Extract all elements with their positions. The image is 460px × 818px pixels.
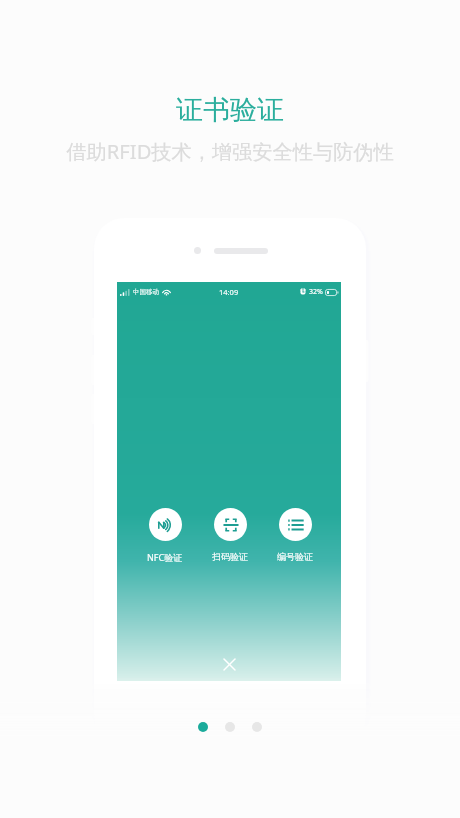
button[interactable]: NFC验证 [135, 508, 195, 563]
staticText: NFC验证 [147, 551, 183, 563]
staticText: 借助RFID技术，增强安全性与防伪性 [0, 137, 460, 165]
staticText: 扫码验证 [212, 551, 248, 562]
button[interactable]: 扫码验证 [200, 508, 260, 562]
staticText: 14:09 [219, 287, 239, 297]
button[interactable]: 编号验证 [265, 508, 325, 562]
staticText: 中国移动 [133, 288, 159, 296]
button[interactable]: Page 2 [225, 722, 235, 732]
staticText: 32% [309, 287, 323, 297]
button[interactable]: Close [214, 649, 244, 679]
staticText: 编号验证 [277, 551, 313, 562]
staticText: 证书验证 [0, 93, 460, 127]
button[interactable]: Page 3 [252, 722, 262, 732]
button[interactable]: Page 1 [198, 722, 208, 732]
